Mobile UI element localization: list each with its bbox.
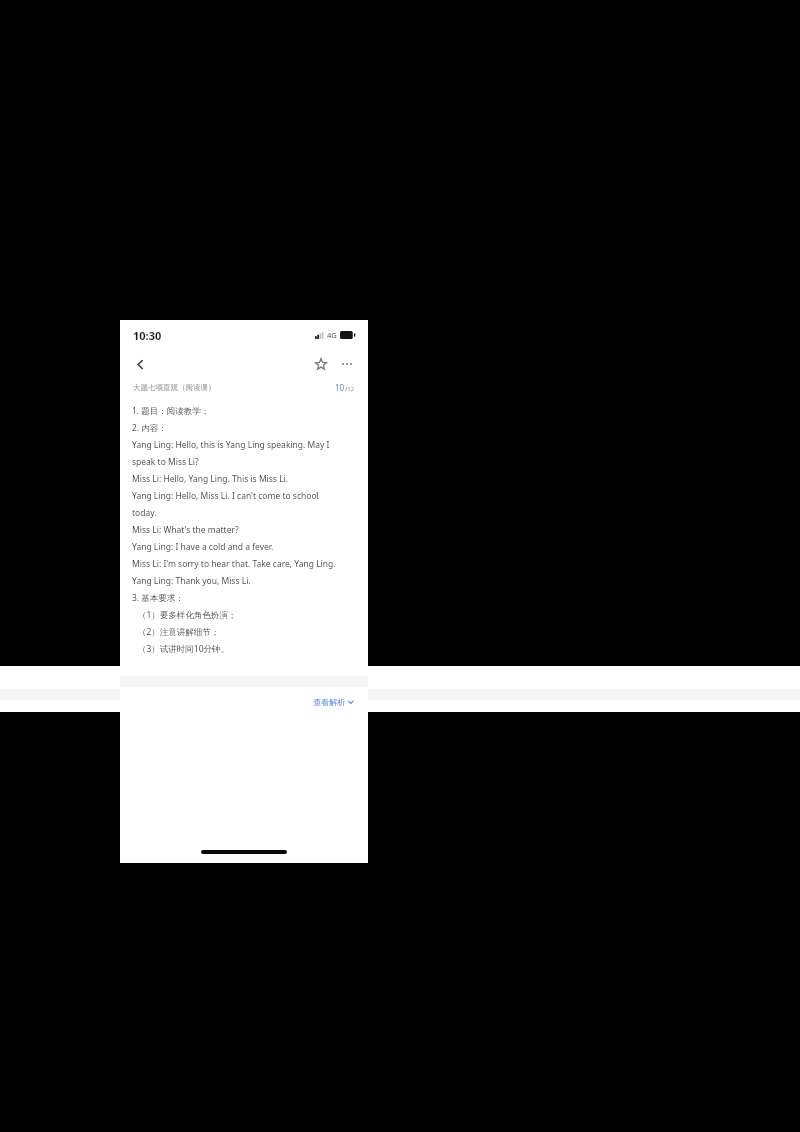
staticText: 2. 内容： [132, 422, 167, 434]
staticText: （2）注意讲解细节； [138, 626, 220, 638]
button[interactable]: More options [336, 353, 358, 375]
staticText: 4G [327, 330, 337, 340]
staticText: Yang Ling: Hello, this is Yang Ling spea… [132, 439, 330, 451]
staticText: Miss Li: I'm sorry to hear that. Take ca… [132, 558, 336, 570]
staticText: Yang Ling: Thank you, Miss Li. [132, 575, 251, 587]
staticText: /12 [345, 385, 355, 393]
staticText: today. [132, 507, 157, 519]
staticText: 3. 基本要求： [132, 592, 184, 604]
staticText: 10:30 [133, 328, 162, 343]
button[interactable]: Favorite [310, 353, 332, 375]
staticText: （1）要多样化角色扮演； [138, 609, 237, 621]
staticText: 查看解析 [313, 697, 345, 707]
staticText: （3）试讲时间10分钟。 [138, 643, 230, 655]
staticText: 大题七项直观（阅读课） [133, 383, 216, 392]
staticText: Yang Ling: I have a cold and a fever. [132, 541, 274, 553]
staticText: Yang Ling: Hello, Miss Li. I can't come … [132, 490, 319, 502]
button[interactable]: Back [130, 354, 150, 374]
staticText: 1. 题目：阅读教学； [132, 405, 210, 417]
staticText: Miss Li: What's the matter? [132, 524, 239, 536]
staticText: 10 [335, 382, 345, 393]
staticText: Miss Li: Hello, Yang Ling. This is Miss … [132, 473, 289, 485]
staticText: speak to Miss Li? [132, 456, 199, 468]
button[interactable]: 查看解析 [309, 693, 358, 711]
